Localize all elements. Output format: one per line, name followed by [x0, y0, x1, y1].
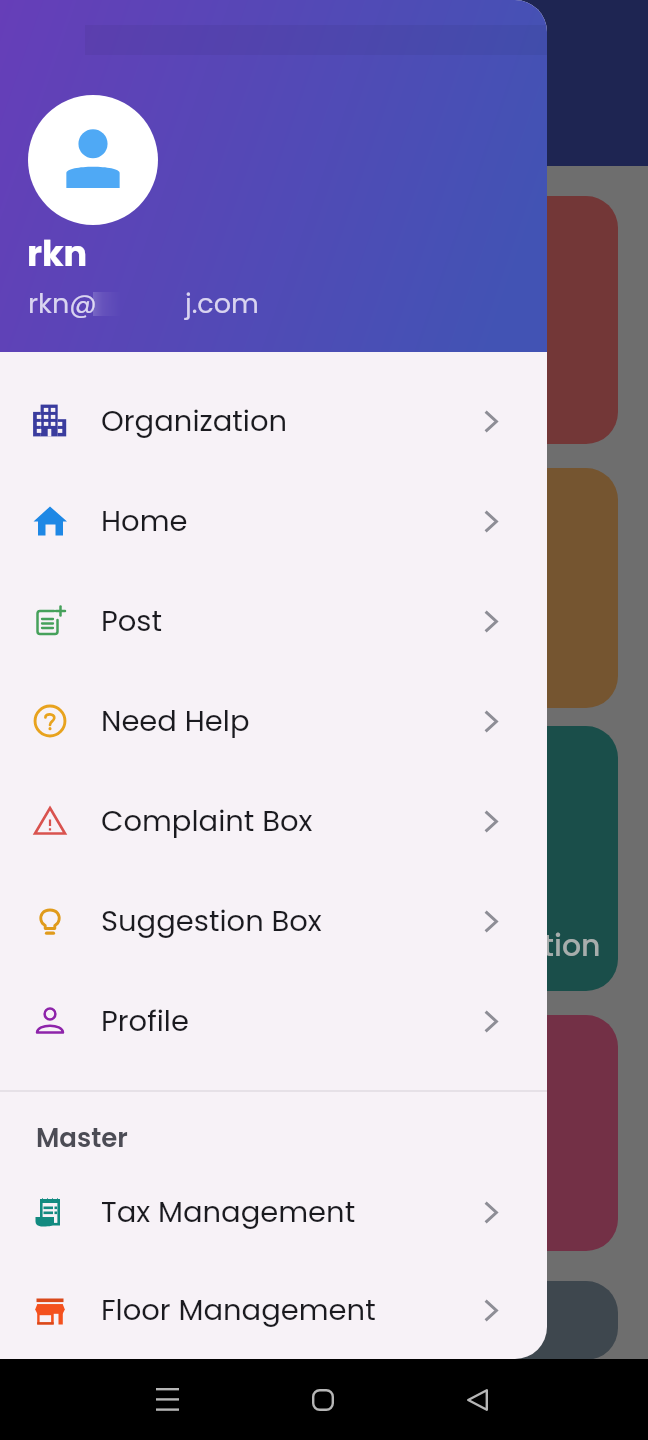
button[interactable]: Complaint Box	[0, 771, 547, 871]
staticText: rkn	[27, 229, 88, 278]
staticText: Home	[101, 501, 188, 542]
staticText: rkn@	[28, 285, 97, 323]
staticText: j.com	[185, 285, 259, 323]
button[interactable]: Home	[0, 471, 547, 571]
button[interactable]: Organization	[0, 371, 547, 471]
staticText: Profile	[101, 1001, 189, 1042]
button[interactable]: Post	[0, 571, 547, 671]
button[interactable]: Need Help	[0, 671, 547, 771]
staticText: Floor Management	[101, 1290, 376, 1331]
staticText: Post	[101, 601, 163, 642]
button[interactable]: Back	[446, 1368, 509, 1431]
staticText: Complaint Box	[101, 801, 313, 842]
staticText: Master	[36, 1120, 128, 1156]
button[interactable]: Tax Management	[0, 1162, 547, 1262]
staticText: Tax Management	[101, 1192, 356, 1233]
staticText: Suggestion Box	[101, 901, 322, 942]
button[interactable]: Recent apps	[136, 1368, 199, 1431]
button[interactable]: Floor Management	[0, 1262, 547, 1359]
button[interactable]: Suggestion Box	[0, 871, 547, 971]
staticText: Organization	[101, 401, 288, 442]
staticText: Need Help	[101, 701, 250, 742]
staticText: Suggestion	[430, 925, 601, 967]
button[interactable]: Profile	[0, 971, 547, 1071]
button[interactable]: Home	[291, 1368, 354, 1431]
